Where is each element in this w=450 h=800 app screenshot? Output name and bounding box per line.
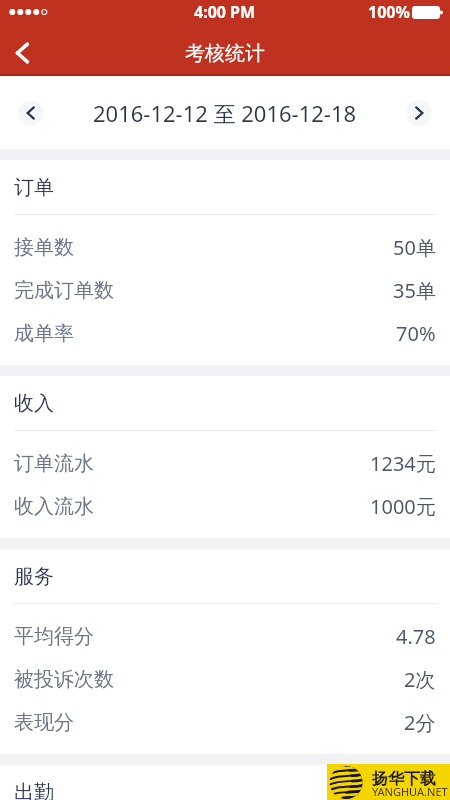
staticText: 成单率 — [14, 321, 74, 346]
staticText: 完成订单数 — [14, 278, 114, 303]
staticText: YANGHUA.NET — [372, 784, 448, 799]
staticText: 服务 — [14, 564, 54, 589]
staticText: 70% — [396, 320, 436, 347]
button[interactable]: 接单数 — [0, 226, 450, 269]
button[interactable]: 被投诉次数 — [0, 658, 450, 701]
staticText: 100% — [368, 1, 410, 23]
staticText: 订单流水 — [14, 451, 94, 476]
button[interactable]: 平均得分 — [0, 615, 450, 658]
button[interactable]: 完成订单数 — [0, 269, 450, 312]
staticText: 出勤 — [14, 780, 54, 800]
staticText: 收入流水 — [14, 494, 94, 519]
staticText: 接单数 — [14, 235, 74, 260]
button[interactable]: Back — [0, 30, 46, 76]
staticText: 4:00 PM — [194, 1, 256, 23]
staticText: 50单 — [393, 234, 436, 261]
staticText: 收入 — [14, 391, 54, 416]
staticText: 平均得分 — [14, 624, 94, 649]
button[interactable]: 订单流水 — [0, 442, 450, 485]
button[interactable]: 收入流水 — [0, 485, 450, 528]
button[interactable]: 成单率 — [0, 312, 450, 355]
staticText: 1234元 — [370, 450, 436, 477]
button[interactable]: Next week — [406, 100, 432, 126]
staticText: 2016-12-12 至 2016-12-18 — [93, 98, 357, 128]
staticText: 4.78 — [396, 623, 436, 650]
staticText: 2分 — [404, 709, 436, 736]
staticText: 表现分 — [14, 710, 74, 735]
button[interactable]: Previous week — [18, 100, 44, 126]
button[interactable]: 表现分 — [0, 701, 450, 744]
staticText: 考核统计 — [185, 41, 265, 66]
staticText: 扬华下载 — [372, 769, 436, 789]
staticText: 1000元 — [370, 493, 436, 520]
staticText: 订单 — [14, 175, 54, 200]
staticText: 2次 — [404, 666, 436, 693]
staticText: 35单 — [393, 277, 436, 304]
staticText: 被投诉次数 — [14, 667, 114, 692]
